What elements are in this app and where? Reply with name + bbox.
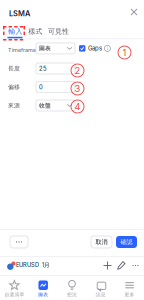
button[interactable]: Add indicator <box>101 259 114 272</box>
staticText: 1 <box>122 47 126 58</box>
button[interactable]: 想法 <box>58 278 86 300</box>
button[interactable]: 樣式 <box>27 25 44 38</box>
staticText: Gaps <box>88 45 102 52</box>
button[interactable]: 圖表 <box>29 278 58 300</box>
staticText: 2 <box>74 65 80 76</box>
staticText: 25 <box>39 65 47 72</box>
button[interactable]: 輸入 <box>7 25 24 38</box>
button[interactable]: Close <box>127 5 141 19</box>
button[interactable]: 自選清單 <box>0 278 29 300</box>
staticText: 1月 <box>42 261 50 269</box>
staticText: 取消 <box>95 238 107 246</box>
staticText: 訊息 <box>96 292 106 298</box>
staticText: 樣式 <box>28 27 42 36</box>
staticText: 圖表 <box>38 292 48 298</box>
staticText: 收盤 <box>39 102 51 109</box>
button[interactable]: More <box>10 236 28 248</box>
staticText: i <box>107 45 108 51</box>
button[interactable]: More options <box>129 259 142 272</box>
staticText: 偏移 <box>8 83 20 91</box>
button[interactable]: 更多 <box>115 278 144 300</box>
staticText: 更多 <box>125 292 135 298</box>
staticText: 確認 <box>120 238 132 246</box>
staticText: 長度 <box>8 65 20 72</box>
staticText: 輸入 <box>8 27 22 36</box>
staticText: Timeframe <box>8 47 36 53</box>
staticText: LSMA <box>9 9 30 18</box>
staticText: 來源 <box>8 102 20 109</box>
staticText: 圖表 <box>39 45 51 52</box>
button[interactable]: 確認 <box>116 236 137 248</box>
staticText: EURUSD <box>16 261 39 268</box>
staticText: 3 <box>74 83 80 94</box>
button[interactable]: 訊息 <box>86 278 115 300</box>
staticText: 想法 <box>67 292 77 298</box>
staticText: 自選清單 <box>4 292 24 298</box>
button[interactable]: 可見性 <box>47 25 70 38</box>
button[interactable]: 取消 <box>91 236 112 248</box>
button[interactable]: Drawing tools <box>115 259 128 272</box>
staticText: 0 <box>39 83 43 91</box>
staticText: 4 <box>74 101 80 112</box>
staticText: 可見性 <box>48 27 69 36</box>
